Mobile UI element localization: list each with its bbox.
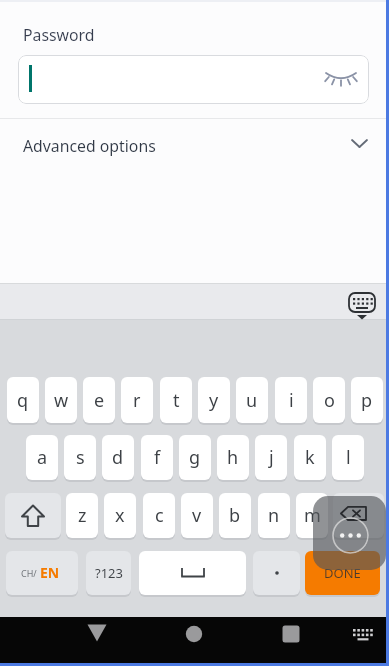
staticText: x — [115, 503, 125, 528]
button[interactable]: c — [143, 493, 175, 538]
button[interactable]: o — [313, 377, 345, 423]
staticText: f — [154, 445, 161, 470]
button[interactable] — [5, 493, 61, 538]
button[interactable]: ?123 — [86, 551, 131, 595]
button[interactable] — [139, 551, 246, 595]
staticText: Advanced options — [23, 135, 156, 157]
button[interactable]: k — [294, 435, 326, 480]
staticText: r — [133, 388, 141, 413]
staticText: ?123 — [95, 564, 123, 582]
staticText: Password — [23, 24, 95, 46]
button[interactable]: z — [66, 493, 98, 538]
staticText: z — [78, 503, 87, 528]
staticText: k — [305, 445, 315, 470]
button[interactable] — [267, 610, 315, 658]
button[interactable]: v — [181, 493, 213, 538]
button[interactable]: n — [258, 493, 290, 538]
staticText: g — [189, 445, 201, 470]
button[interactable]: g — [179, 435, 211, 480]
staticText: v — [192, 503, 202, 528]
button[interactable]: y — [198, 377, 230, 423]
button[interactable] — [73, 609, 121, 657]
staticText: m — [304, 503, 321, 528]
button[interactable]: l — [332, 435, 364, 480]
button[interactable]: j — [255, 435, 287, 480]
button[interactable] — [320, 58, 362, 100]
staticText: d — [112, 445, 124, 470]
button[interactable]: d — [102, 435, 134, 480]
button[interactable]: t — [160, 377, 192, 423]
button[interactable]: q — [7, 377, 39, 423]
button[interactable] — [170, 610, 218, 658]
button[interactable] — [331, 516, 369, 554]
button[interactable]: s — [64, 435, 96, 480]
staticText: p — [361, 388, 373, 413]
button[interactable] — [18, 55, 369, 104]
button[interactable] — [343, 611, 383, 659]
staticText: y — [209, 388, 219, 413]
staticText: n — [268, 503, 280, 528]
button[interactable]: p — [351, 377, 383, 423]
staticText: q — [17, 388, 29, 413]
button[interactable]: DONE — [305, 551, 380, 595]
button[interactable]: CH/ — [6, 551, 78, 595]
staticText: l — [346, 445, 351, 470]
button[interactable]: m — [296, 493, 328, 538]
button[interactable]: u — [236, 377, 268, 423]
button[interactable]: a — [26, 435, 58, 480]
staticText: j — [269, 445, 274, 470]
button[interactable] — [344, 286, 380, 322]
button[interactable]: f — [141, 435, 173, 480]
button[interactable] — [333, 493, 384, 538]
staticText: o — [324, 388, 335, 413]
button[interactable] — [253, 551, 300, 595]
staticText: i — [289, 388, 294, 413]
staticText: EN — [40, 563, 60, 582]
button[interactable]: x — [104, 493, 136, 538]
button[interactable]: b — [219, 493, 251, 538]
staticText: b — [229, 503, 241, 528]
staticText: DONE — [324, 564, 361, 582]
staticText: c — [155, 503, 164, 528]
staticText: u — [246, 388, 258, 413]
button[interactable]: w — [45, 377, 77, 423]
staticText: w — [54, 388, 69, 413]
staticText: CH/ — [21, 567, 37, 579]
button[interactable]: r — [121, 377, 153, 423]
button[interactable]: Advanced options — [0, 120, 389, 168]
staticText: s — [76, 445, 85, 470]
staticText: t — [173, 388, 180, 413]
button[interactable]: e — [83, 377, 115, 423]
staticText: h — [227, 445, 239, 470]
staticText: a — [37, 445, 48, 470]
staticText: e — [94, 388, 105, 413]
button[interactable]: h — [217, 435, 249, 480]
button[interactable]: i — [275, 377, 307, 423]
